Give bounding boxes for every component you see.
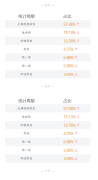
button[interactable]: 批发商 <box>5 28 90 37</box>
staticText: 57.38% ↑ <box>63 21 79 27</box>
staticText: 其他 <box>23 47 29 51</box>
staticText: 57.38% ↑ <box>63 106 79 111</box>
button[interactable]: 正规电商渠道 <box>5 20 90 28</box>
staticText: 4.75% ↑ <box>63 46 77 52</box>
staticText: 13.78% ↑ <box>63 38 79 43</box>
button[interactable]: 经销渠道 <box>5 37 90 45</box>
staticText: 5.88% ↓ <box>63 147 77 153</box>
staticText: 批发商 <box>22 31 31 34</box>
button[interactable]: 第二类 <box>5 62 90 70</box>
staticText: 5.88% ↓ <box>63 63 77 68</box>
staticText: 第一类 <box>22 140 31 143</box>
staticText: 第二类 <box>22 64 31 67</box>
staticText: 经销渠道 <box>20 39 32 42</box>
staticText: — 完成 — <box>41 169 55 172</box>
button[interactable]: 同业渠道 <box>5 154 90 163</box>
staticText: 占比 <box>63 14 71 19</box>
staticText: 批发商 <box>22 115 31 118</box>
staticText: 4.75% ↑ <box>63 131 77 136</box>
button[interactable]: 同业渠道 <box>5 70 90 78</box>
staticText: 经销渠道 <box>20 123 32 127</box>
staticText: 统计周期 <box>18 14 34 19</box>
button[interactable]: 批发商 <box>5 113 90 121</box>
staticText: 3.04% ↓ <box>63 156 77 161</box>
staticText: 同业渠道 <box>20 72 32 76</box>
staticText: 第二类 <box>22 148 31 152</box>
button[interactable]: 经销渠道 <box>5 121 90 129</box>
staticText: 第一类 <box>22 56 31 59</box>
button[interactable]: 其他 <box>5 45 90 53</box>
button[interactable]: 第一类 <box>5 138 90 146</box>
staticText: — 报表 — <box>41 3 55 7</box>
staticText: 其他 <box>23 132 29 135</box>
staticText: 3.04% ↓ <box>63 71 77 77</box>
staticText: 占比 <box>63 98 71 103</box>
button[interactable]: 正规电商渠道 <box>5 104 90 113</box>
staticText: 6.88% ↑ <box>63 55 77 60</box>
staticText: 19.13% ↓ <box>63 30 79 35</box>
staticText: 正规电商渠道 <box>17 22 35 26</box>
button[interactable]: 第二类 <box>5 146 90 154</box>
staticText: 正规电商渠道 <box>17 107 35 110</box>
staticText: 统计周期 <box>18 98 34 103</box>
staticText: 6.88% ↑ <box>63 139 77 144</box>
staticText: 19.13% ↓ <box>63 114 79 119</box>
button[interactable]: 第一类 <box>5 53 90 62</box>
button[interactable]: 其他 <box>5 129 90 138</box>
staticText: 同业渠道 <box>20 157 32 160</box>
staticText: 13.78% ↑ <box>63 122 79 128</box>
staticText: — 报表 — <box>41 84 55 88</box>
